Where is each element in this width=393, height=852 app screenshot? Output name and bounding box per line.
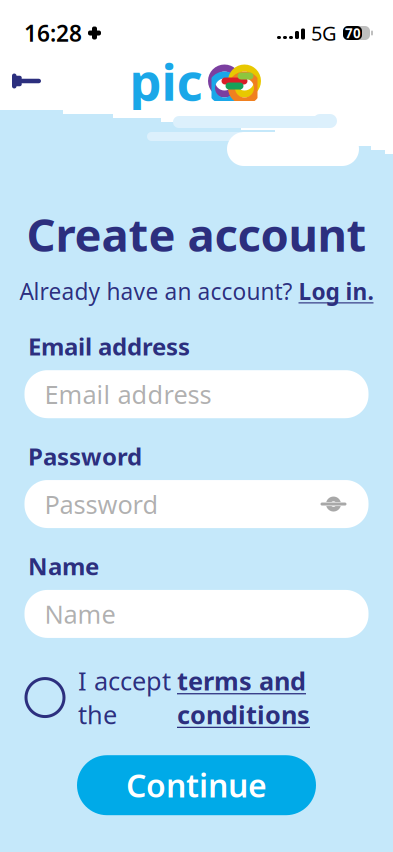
staticText: 5G <box>311 20 337 46</box>
button[interactable]: Accept terms and conditions <box>26 679 64 717</box>
button[interactable]: Continue <box>77 755 316 815</box>
button[interactable]: Name <box>24 590 368 638</box>
staticText: Continue <box>126 764 267 806</box>
staticText: pic <box>129 47 202 115</box>
staticText: Password <box>28 440 142 472</box>
staticText: Email address <box>44 377 211 411</box>
staticText: Already have an account? <box>19 276 292 306</box>
button[interactable]: I accept the <box>64 664 356 731</box>
button[interactable]: Already have an account? <box>11 264 381 306</box>
staticText: Name <box>44 597 115 631</box>
staticText: terms and conditions <box>177 664 310 731</box>
staticText: Create account <box>26 204 366 264</box>
staticText: Name <box>28 550 99 582</box>
staticText: 16:28 <box>24 18 82 48</box>
button[interactable]: Password <box>24 480 368 528</box>
staticText: 70 <box>345 24 361 42</box>
staticText: Log in. <box>298 276 373 306</box>
staticText: Password <box>44 487 158 521</box>
button[interactable]: Email address <box>24 370 368 418</box>
staticText: Email address <box>28 330 190 362</box>
button[interactable]: Back <box>0 57 54 105</box>
staticText: I accept the <box>78 664 171 731</box>
